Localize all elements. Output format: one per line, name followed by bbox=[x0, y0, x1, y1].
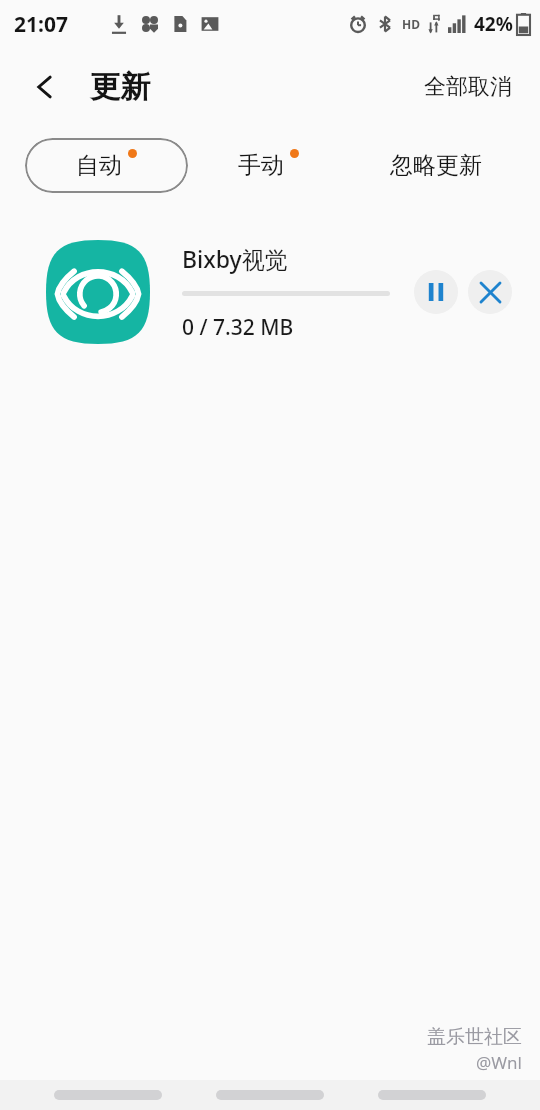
staticText: @Wnl bbox=[476, 1051, 522, 1074]
staticText: 更新 bbox=[90, 68, 150, 106]
button[interactable]: 自动 bbox=[25, 138, 188, 193]
staticText: 42% bbox=[474, 11, 513, 37]
staticText: 自动 bbox=[76, 151, 122, 180]
staticText: 0 / 7.32 MB bbox=[182, 313, 294, 342]
button[interactable]: Pause bbox=[414, 270, 458, 314]
button[interactable]: 全部取消 bbox=[418, 67, 518, 107]
button[interactable]: Cancel bbox=[468, 270, 512, 314]
staticText: 忽略更新 bbox=[390, 151, 482, 180]
staticText: Bixby视觉 bbox=[182, 243, 288, 274]
staticText: 21:07 bbox=[14, 10, 68, 39]
staticText: HD bbox=[402, 16, 420, 32]
button[interactable]: Back bbox=[22, 64, 68, 110]
button[interactable]: Navigation bbox=[54, 1090, 162, 1100]
button[interactable]: Navigation bbox=[216, 1090, 324, 1100]
staticText: 手动 bbox=[238, 151, 284, 180]
button[interactable]: Navigation bbox=[378, 1090, 486, 1100]
button[interactable]: 忽略更新 bbox=[380, 141, 492, 190]
button[interactable]: Bixby视觉 bbox=[0, 232, 540, 352]
staticText: 盖乐世社区 bbox=[427, 1025, 522, 1049]
staticText: 全部取消 bbox=[424, 73, 512, 101]
button[interactable]: 手动 bbox=[228, 141, 309, 190]
